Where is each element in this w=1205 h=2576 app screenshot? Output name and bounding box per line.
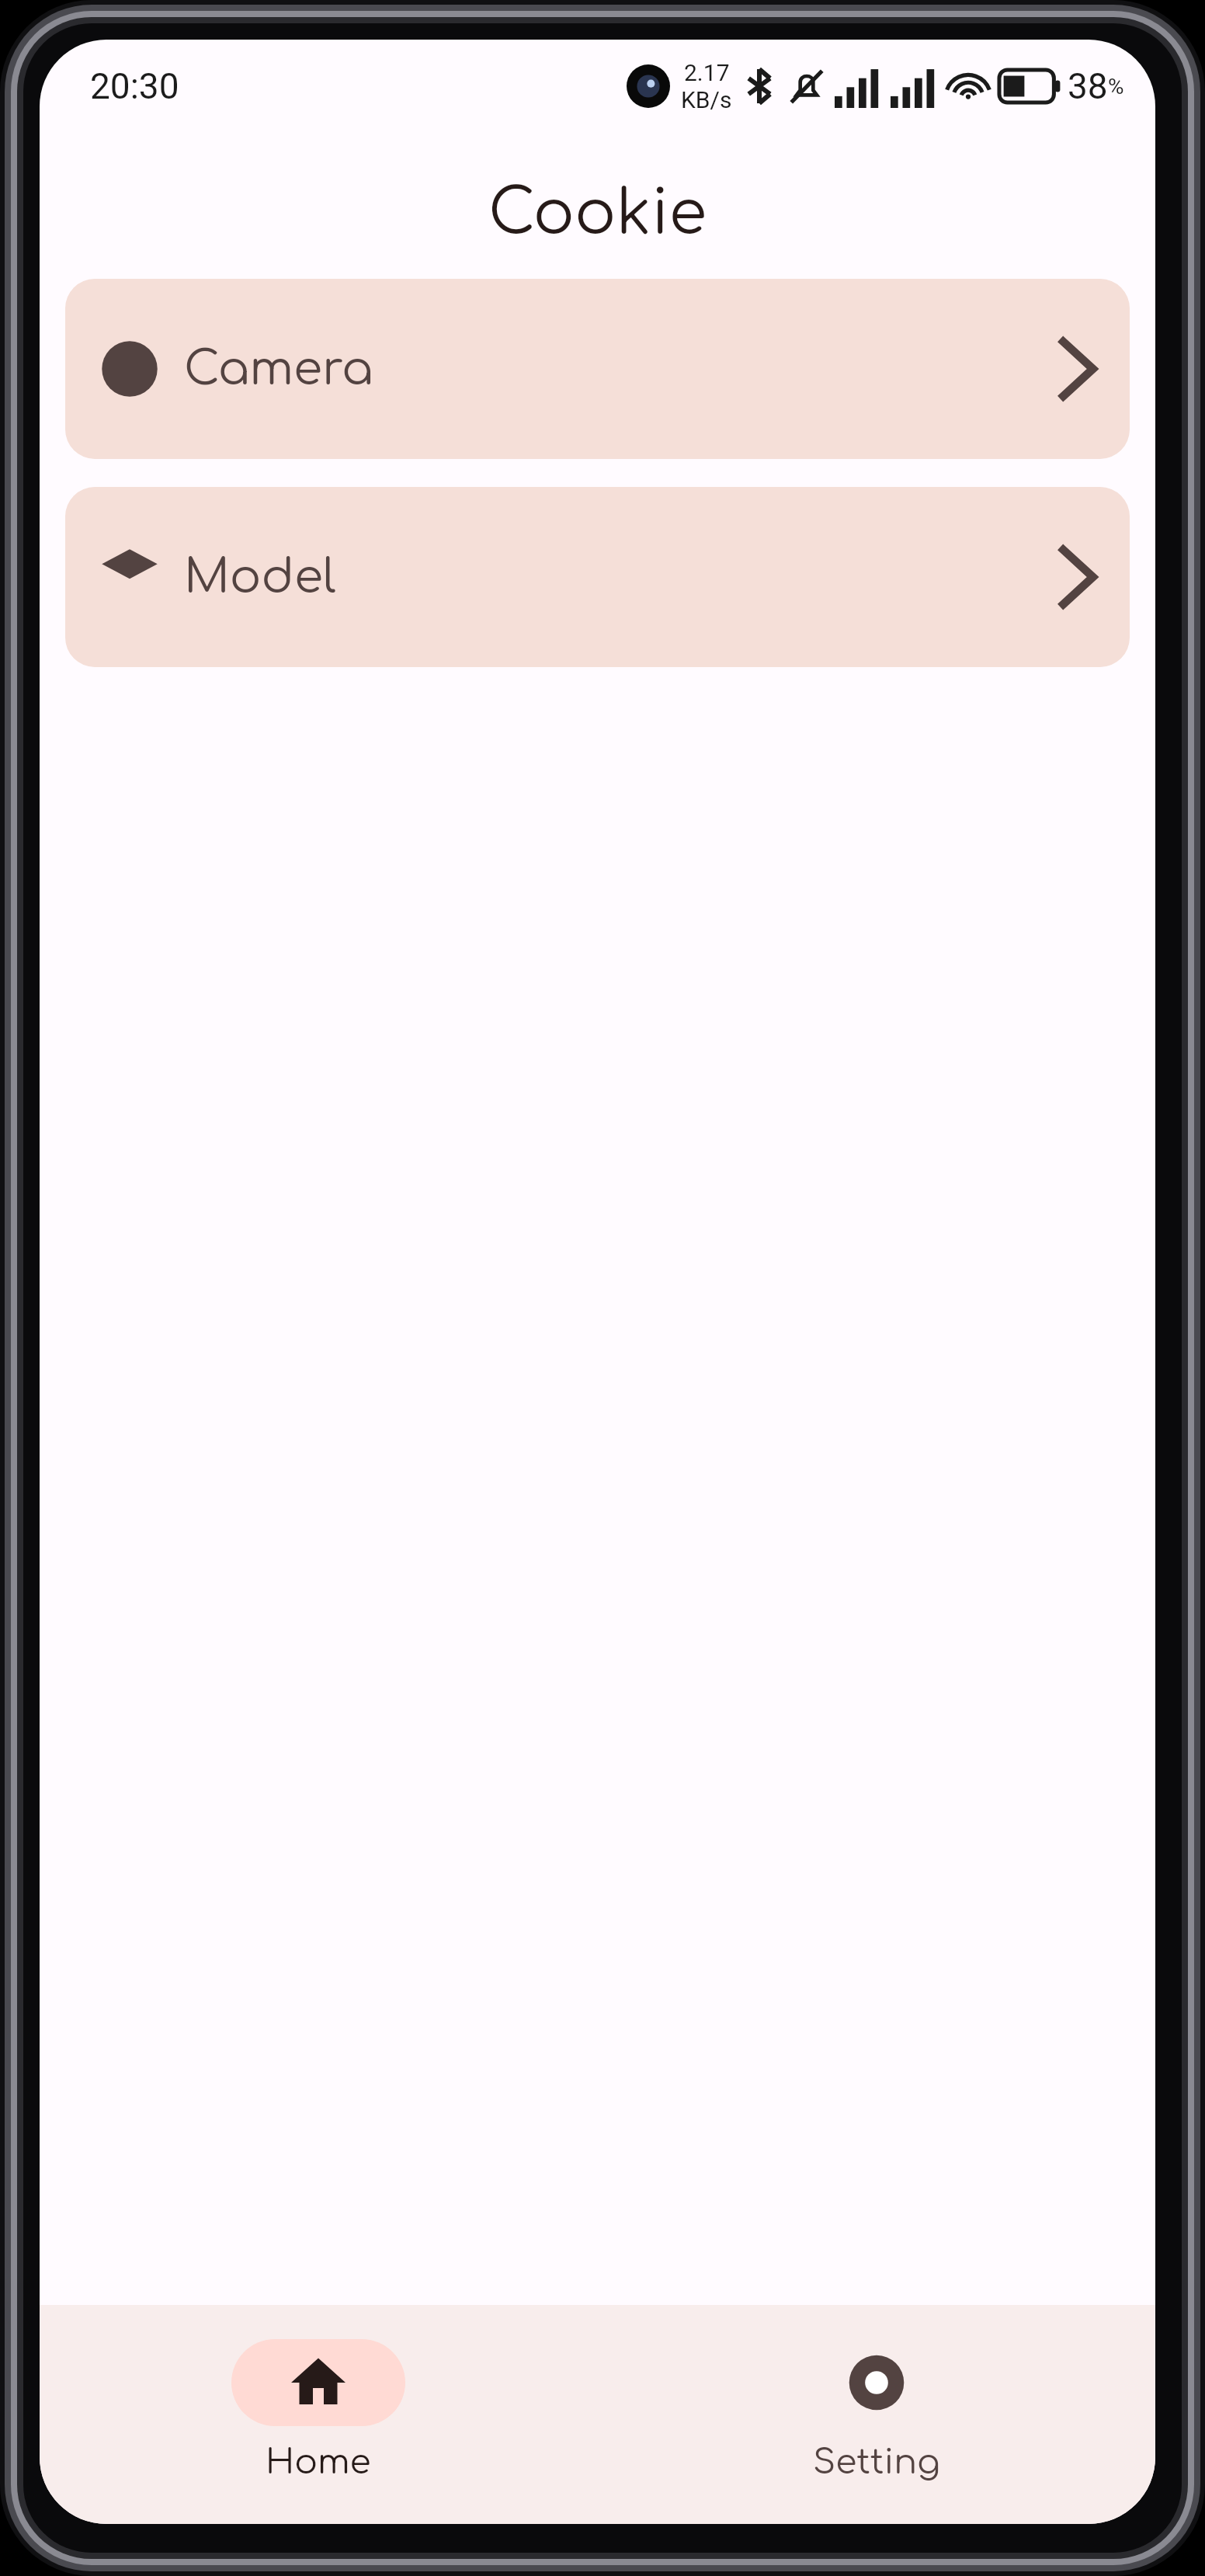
staticText: 38 xyxy=(1068,65,1108,107)
button[interactable]: Camera xyxy=(65,279,1130,459)
staticText: Camera xyxy=(184,343,373,395)
button[interactable]: Model xyxy=(65,487,1130,667)
staticText: KB/s xyxy=(681,86,732,113)
staticText: 20:30 xyxy=(90,65,179,107)
button[interactable]: Home xyxy=(40,2305,597,2524)
staticText: Home xyxy=(266,2443,371,2481)
staticText: Model xyxy=(184,551,336,603)
button[interactable]: Setting xyxy=(597,2305,1155,2524)
staticText: 2.17 xyxy=(684,59,730,86)
staticText: Cookie xyxy=(40,179,1155,248)
staticText: % xyxy=(1108,74,1124,99)
staticText: Setting xyxy=(813,2443,940,2481)
